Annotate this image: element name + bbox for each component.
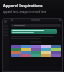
staticText: apparel text→images in record time <box>3 10 61 14</box>
button[interactable] <box>11 29 57 34</box>
button[interactable]: Menu <box>2 18 63 72</box>
button[interactable] <box>11 24 61 27</box>
button[interactable]: Generated image results <box>11 45 61 57</box>
staticText: Apparel Inspirations <box>3 3 61 8</box>
